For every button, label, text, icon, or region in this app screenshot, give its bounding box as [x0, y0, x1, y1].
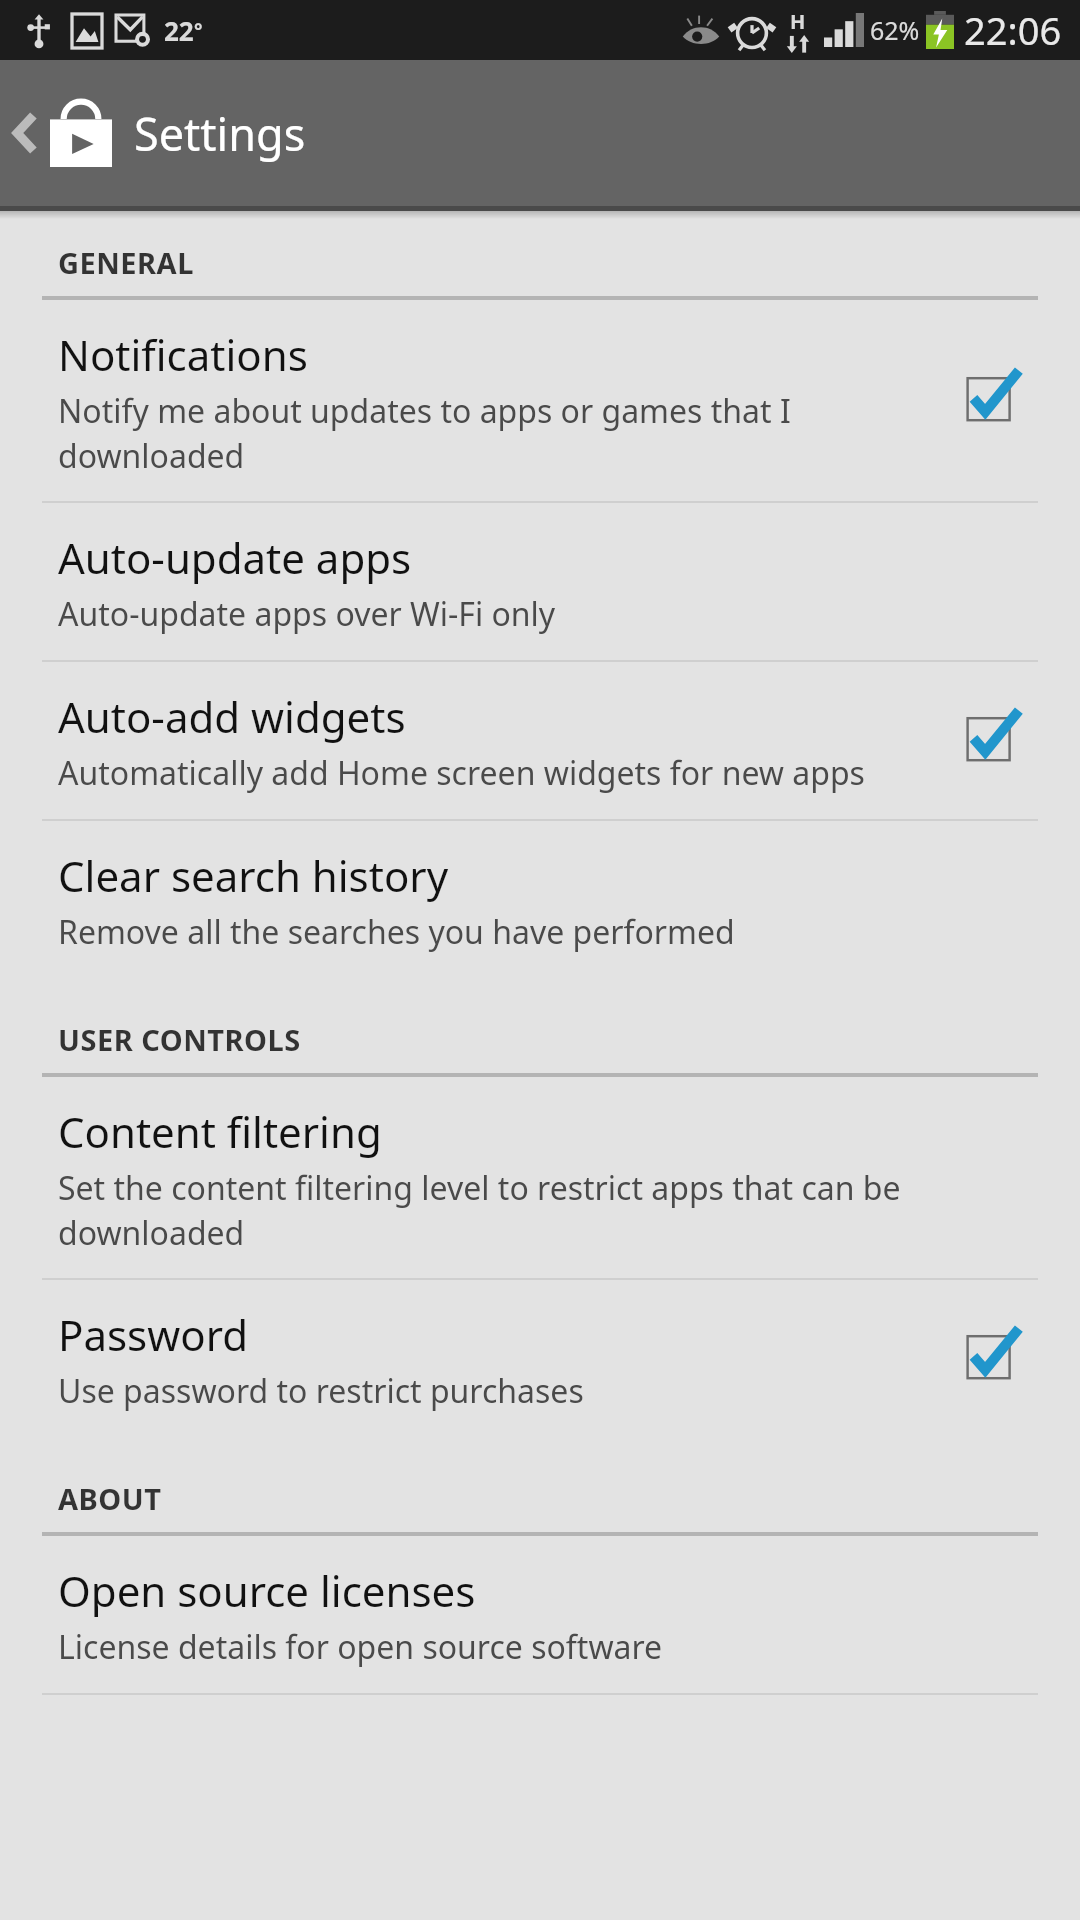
staticText: Auto-update apps over Wi-Fi only — [58, 592, 556, 636]
staticText: Automatically add Home screen widgets fo… — [58, 751, 865, 795]
button[interactable]: Content filtering — [0, 1077, 1080, 1280]
staticText: License details for open source software — [58, 1625, 663, 1669]
staticText: Remove all the searches you have perform… — [58, 910, 735, 954]
staticText: Settings — [134, 103, 306, 164]
staticText: Password — [58, 1306, 248, 1363]
staticText: Auto-update apps — [58, 529, 412, 586]
staticText: USER CONTROLS — [58, 1020, 301, 1059]
staticText: Notifications — [58, 326, 308, 383]
button[interactable]: Navigate up, Settings — [0, 99, 326, 167]
staticText: Open source licenses — [58, 1562, 476, 1619]
staticText: Auto-add widgets — [58, 688, 406, 745]
staticText: ° — [194, 17, 203, 44]
button[interactable]: Notifications — [0, 300, 1080, 503]
staticText: 22:06 — [964, 4, 1062, 56]
staticText: GENERAL — [58, 243, 194, 282]
button[interactable]: Auto-update apps — [0, 503, 1080, 662]
staticText: 62% — [870, 13, 920, 47]
staticText: Clear search history — [58, 847, 449, 904]
button[interactable]: Auto-add widgets — [0, 662, 1080, 821]
button[interactable]: Open source licenses — [0, 1536, 1080, 1695]
button[interactable]: Clear search history — [0, 821, 1080, 978]
staticText: Use password to restrict purchases — [58, 1369, 584, 1413]
staticText: 22 — [164, 13, 194, 48]
staticText: H — [790, 8, 806, 35]
button[interactable]: Password — [0, 1280, 1080, 1437]
staticText: Set the content filtering level to restr… — [58, 1166, 1016, 1254]
staticText: ABOUT — [58, 1479, 162, 1518]
staticText: Content filtering — [58, 1103, 382, 1160]
staticText: Notify me about updates to apps or games… — [58, 389, 930, 477]
